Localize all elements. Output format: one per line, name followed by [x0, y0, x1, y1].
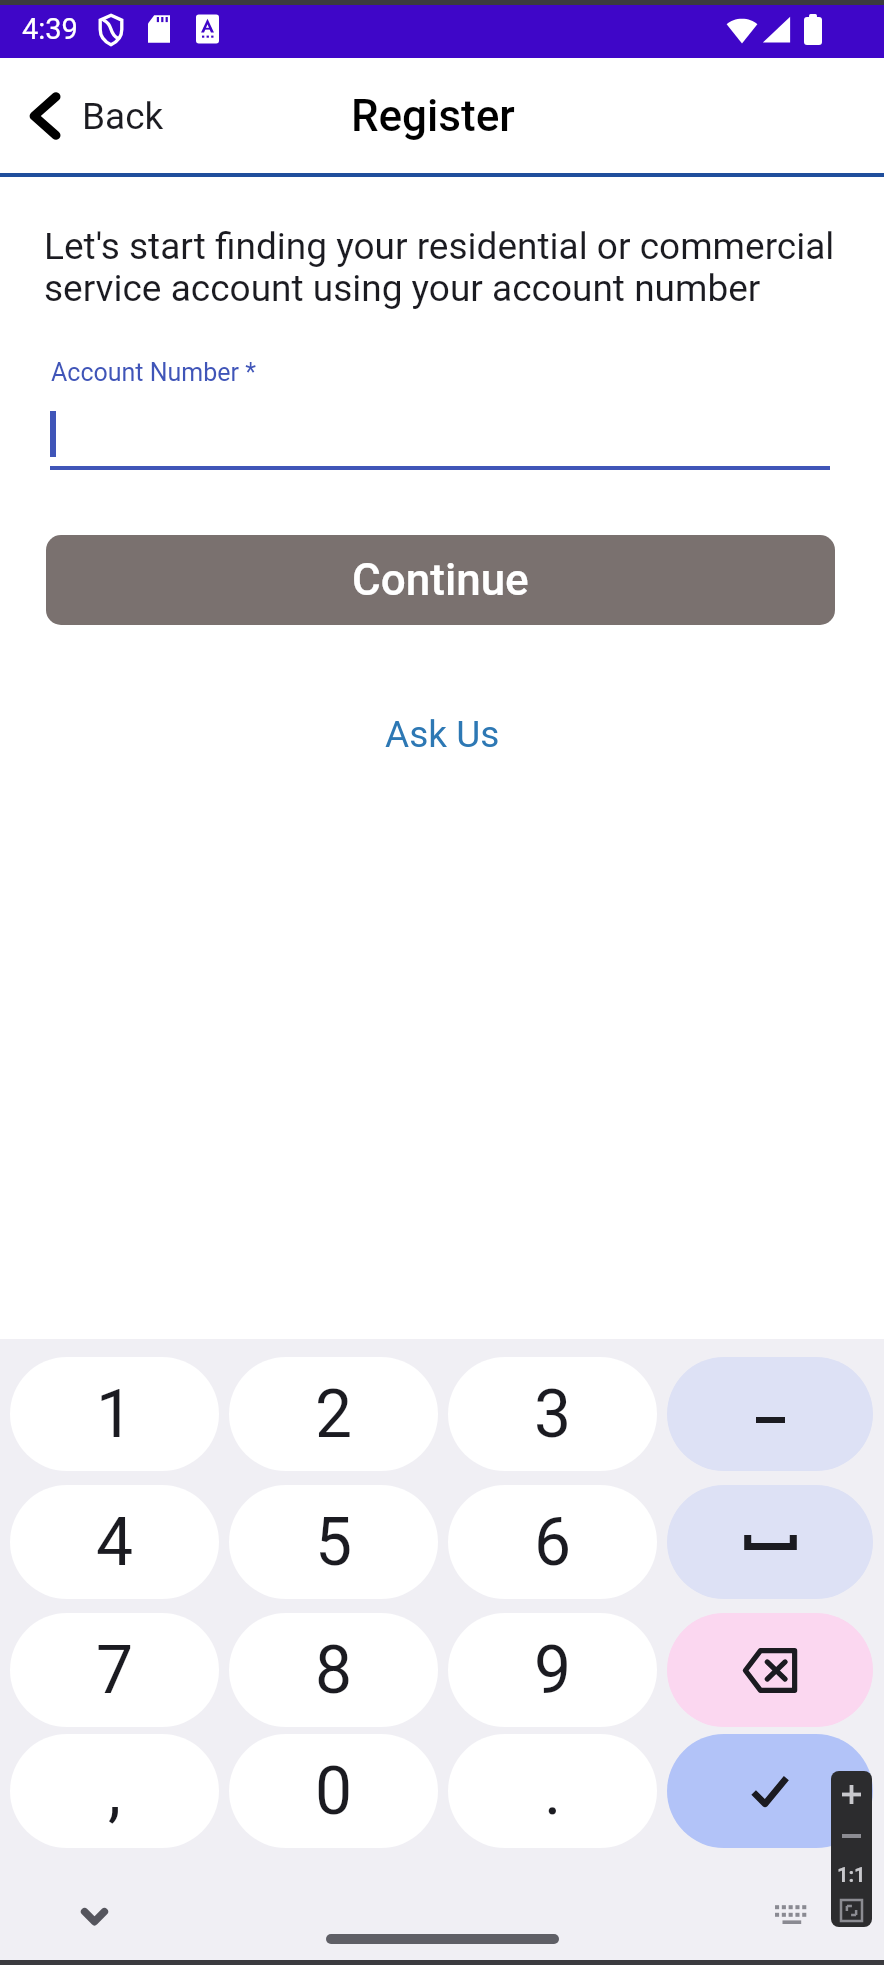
button[interactable]: 9: [448, 1613, 657, 1727]
staticText: 1:1: [837, 1863, 866, 1886]
staticText: 4:39: [22, 12, 78, 46]
button[interactable]: 6: [448, 1485, 657, 1599]
button[interactable]: 5: [229, 1485, 438, 1599]
staticText: 3: [534, 1376, 572, 1453]
button[interactable]: 1: [10, 1357, 219, 1471]
staticText: 8: [315, 1632, 353, 1709]
staticText: 5: [315, 1504, 353, 1581]
staticText: 0: [315, 1753, 353, 1830]
staticText: Register: [351, 90, 515, 142]
staticText: 6: [534, 1504, 572, 1581]
button[interactable]: ,: [10, 1734, 219, 1848]
staticText: 2: [315, 1376, 353, 1453]
button[interactable]: Enter: [667, 1734, 873, 1848]
button[interactable]: 7: [10, 1613, 219, 1727]
button[interactable]: 4: [10, 1485, 219, 1599]
staticText: .: [544, 1753, 562, 1830]
button[interactable]: Hide keyboard: [73, 1900, 116, 1933]
button[interactable]: Zoom out: [831, 1817, 872, 1855]
button[interactable]: Actual size: [831, 1855, 872, 1893]
staticText: 9: [534, 1632, 572, 1709]
button[interactable]: Space: [667, 1485, 873, 1599]
staticText: ,: [108, 1753, 121, 1830]
button[interactable]: Continue: [46, 535, 835, 625]
button[interactable]: 0: [229, 1734, 438, 1848]
staticText: 4: [96, 1504, 134, 1581]
button[interactable]: .: [448, 1734, 657, 1848]
button[interactable]: Switch keyboard: [764, 1894, 818, 1934]
staticText: Ask Us: [385, 713, 500, 756]
button[interactable]: Zoom in: [831, 1771, 872, 1817]
staticText: Account Number *: [51, 358, 256, 387]
button[interactable]: Backspace: [667, 1613, 873, 1727]
button[interactable]: 2: [229, 1357, 438, 1471]
button[interactable]: Ask Us: [371, 707, 514, 762]
button[interactable]: Back: [13, 81, 174, 151]
staticText: 7: [96, 1632, 134, 1709]
staticText: 1: [96, 1376, 134, 1453]
staticText: Let's start finding your residential or …: [44, 225, 835, 310]
button[interactable]: Dash: [667, 1357, 873, 1471]
staticText: Continue: [352, 554, 529, 606]
button[interactable]: 8: [229, 1613, 438, 1727]
button[interactable]: 3: [448, 1357, 657, 1471]
staticText: Back: [82, 95, 164, 138]
button[interactable]: Fit to screen: [831, 1893, 872, 1927]
